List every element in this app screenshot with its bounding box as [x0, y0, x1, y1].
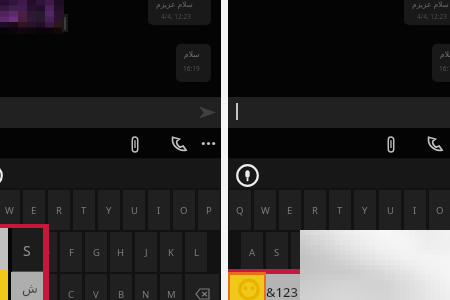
staticText: I: [157, 204, 161, 217]
button[interactable]: G: [341, 232, 363, 272]
staticText: Z: [274, 288, 280, 300]
staticText: سلام: [440, 50, 450, 59]
button[interactable]: V: [85, 274, 107, 300]
staticText: J: [145, 246, 148, 259]
button[interactable]: T: [329, 190, 351, 230]
button[interactable]: N: [391, 274, 413, 300]
staticText: F: [325, 246, 330, 259]
staticText: S: [274, 246, 280, 259]
button[interactable]: Z: [266, 274, 288, 300]
button[interactable]: S: [266, 232, 288, 272]
staticText: 16:19: [439, 64, 450, 73]
button[interactable]: B: [110, 274, 132, 300]
button[interactable]: D: [291, 232, 313, 272]
button[interactable]: E: [279, 190, 301, 230]
button[interactable]: &123: [266, 274, 300, 300]
staticText: U: [387, 204, 394, 217]
button[interactable]: U: [123, 190, 145, 230]
button[interactable]: M: [416, 274, 438, 300]
other: More options: [202, 141, 215, 146]
button[interactable]: S: [12, 228, 43, 271]
staticText: M: [167, 288, 176, 300]
button[interactable]: سلام: [176, 44, 211, 82]
staticText: 4/4, 12:23: [161, 12, 191, 21]
button[interactable]: J: [391, 232, 413, 272]
staticText: سلام: [184, 50, 200, 59]
staticText: Y: [106, 204, 112, 217]
staticText: Q: [236, 204, 244, 217]
button[interactable]: Y: [354, 190, 376, 230]
button[interactable]: D: [35, 232, 57, 272]
button[interactable]: I: [404, 190, 426, 230]
staticText: S: [18, 246, 24, 259]
button[interactable]: F: [60, 232, 82, 272]
button[interactable]: M: [160, 274, 182, 300]
staticText: L: [194, 246, 199, 259]
button[interactable]: سلام عزیزم: [148, 0, 211, 25]
staticText: I: [413, 204, 417, 217]
button[interactable]: N: [135, 274, 157, 300]
other: Send: [199, 105, 216, 120]
staticText: G: [93, 246, 100, 259]
button[interactable]: A: [241, 232, 263, 272]
button[interactable]: U: [379, 190, 401, 230]
button[interactable]: R: [48, 190, 70, 230]
other: Voice input: [236, 164, 259, 187]
button[interactable]: W: [254, 190, 276, 230]
button[interactable]: A: [0, 232, 7, 272]
staticText: X: [299, 288, 305, 300]
button[interactable]: ش: [11, 272, 43, 300]
button[interactable]: W: [0, 190, 20, 230]
button[interactable]: T: [73, 190, 95, 230]
staticText: سلام عزیزم: [412, 0, 449, 9]
button[interactable]: P: [198, 190, 220, 230]
button[interactable]: [0, 97, 221, 128]
button[interactable]: O: [173, 190, 195, 230]
button[interactable]: G: [85, 232, 107, 272]
staticText: Y: [362, 204, 368, 217]
button[interactable]: سلام عزیزم: [404, 0, 450, 25]
button[interactable]: X: [35, 274, 57, 300]
button[interactable]: F: [316, 232, 338, 272]
button[interactable]: [228, 97, 450, 128]
button[interactable]: Q: [229, 190, 251, 230]
button[interactable]: H: [110, 232, 132, 272]
button[interactable]: X: [291, 274, 313, 300]
button[interactable]: J: [135, 232, 157, 272]
button[interactable]: E: [23, 190, 45, 230]
button[interactable]: C: [60, 274, 82, 300]
staticText: E: [287, 204, 293, 217]
button[interactable]: Y: [98, 190, 120, 230]
button[interactable]: Shift: [228, 274, 262, 300]
button[interactable]: H: [366, 232, 388, 272]
button[interactable]: R: [304, 190, 326, 230]
staticText: N: [142, 288, 150, 300]
button[interactable]: Backspace: [185, 274, 219, 300]
staticText: 16:19: [183, 64, 200, 73]
button[interactable]: L: [185, 232, 207, 272]
button[interactable]: S: [10, 232, 32, 272]
staticText: V: [93, 288, 99, 300]
button[interactable]: K: [160, 232, 182, 272]
other: Attach: [131, 137, 139, 152]
staticText: D: [299, 246, 306, 259]
button[interactable]: C: [316, 274, 338, 300]
button[interactable]: Emoji: [228, 272, 266, 300]
other: Attach: [387, 137, 395, 152]
button[interactable]: I: [148, 190, 170, 230]
button[interactable]: O: [429, 190, 450, 230]
staticText: O: [436, 204, 444, 217]
button[interactable]: Z: [10, 274, 32, 300]
button[interactable]: سلام: [432, 44, 450, 82]
staticText: K: [168, 246, 174, 259]
